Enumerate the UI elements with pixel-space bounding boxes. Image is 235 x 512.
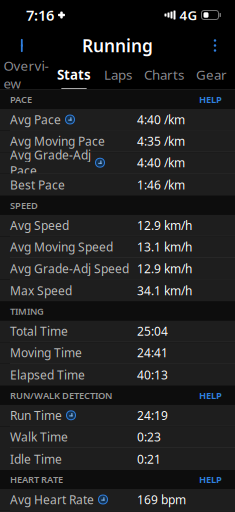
button[interactable]: Stats xyxy=(52,61,96,89)
staticText: 169 bpm xyxy=(137,491,186,507)
staticText: Avg Moving Speed xyxy=(10,239,113,255)
staticText: Running xyxy=(82,34,153,57)
button[interactable]: Laps xyxy=(96,61,140,89)
button[interactable]: HELP xyxy=(196,90,225,109)
staticText: HELP xyxy=(199,473,222,486)
staticText: Elapsed Time xyxy=(10,367,85,383)
staticText: Stats xyxy=(57,66,91,83)
staticText: Charts xyxy=(144,66,184,83)
button[interactable]: Charts xyxy=(140,61,188,89)
staticText: 4:40 /km xyxy=(137,155,185,171)
staticText: Overview xyxy=(3,57,48,92)
staticText: 4:40 /km xyxy=(137,111,185,127)
staticText: Moving Time xyxy=(10,345,82,361)
staticText: 12.9 km/h xyxy=(137,260,192,276)
staticText: Avg Pace xyxy=(10,111,61,127)
button[interactable]: Overview xyxy=(0,61,52,89)
staticText: Total Time xyxy=(10,323,68,339)
staticText: SPEED xyxy=(10,199,38,211)
staticText: 25:04 xyxy=(137,323,168,339)
staticText: Best Pace xyxy=(10,177,65,193)
staticText: 24:19 xyxy=(137,407,168,423)
staticText: 0:21 xyxy=(137,451,161,467)
staticText: Avg Heart Rate xyxy=(10,491,94,507)
button[interactable]: Back xyxy=(0,30,40,60)
button[interactable]: Gear xyxy=(188,61,235,89)
button[interactable]: HELP xyxy=(196,470,225,489)
staticText: 0:23 xyxy=(137,429,161,445)
staticText: 40:13 xyxy=(137,367,168,383)
staticText: Gear xyxy=(196,66,227,83)
staticText: 7:16 xyxy=(26,5,54,25)
button[interactable]: More options xyxy=(195,30,235,60)
staticText: HELP xyxy=(199,389,222,401)
staticText: Avg Speed xyxy=(10,217,69,233)
staticText: HELP xyxy=(199,93,222,106)
staticText: PACE xyxy=(10,93,32,106)
staticText: 12.9 km/h xyxy=(137,217,192,233)
staticText: 4:35 /km xyxy=(137,133,185,149)
staticText: Avg Grade-Adj Pace xyxy=(10,147,91,179)
staticText: Walk Time xyxy=(10,429,68,445)
staticText: Avg Grade-Adj Speed xyxy=(10,260,129,276)
staticText: 24:41 xyxy=(137,345,168,361)
button[interactable]: HELP xyxy=(196,386,225,404)
staticText: RUN/WALK DETECTION xyxy=(10,389,112,401)
staticText: 4G xyxy=(179,6,197,24)
staticText: 34.1 km/h xyxy=(137,283,192,298)
staticText: Run Time xyxy=(10,407,62,423)
staticText: 13.1 km/h xyxy=(137,239,192,255)
staticText: Avg Moving Pace xyxy=(10,133,105,149)
staticText: TIMING xyxy=(10,305,44,317)
staticText: 1:46 /km xyxy=(137,177,185,193)
staticText: Idle Time xyxy=(10,451,62,467)
staticText: Max Speed xyxy=(10,283,72,298)
staticText: HEART RATE xyxy=(10,473,63,486)
staticText: Laps xyxy=(104,66,132,83)
